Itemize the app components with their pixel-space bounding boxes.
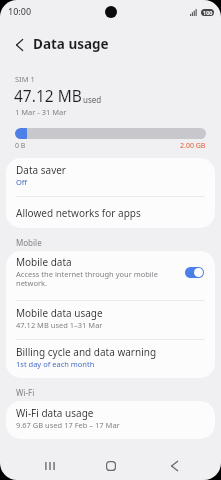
button[interactable]: Allowed networks for apps <box>6 197 215 228</box>
button[interactable]: Recent apps <box>30 452 70 480</box>
staticText: Mobile data usage <box>16 306 103 320</box>
staticText: 0 B <box>15 141 26 151</box>
staticText: Data saver <box>16 163 66 177</box>
staticText: Mobile data <box>16 255 72 269</box>
staticText: Wi-Fi <box>16 387 35 398</box>
staticText: 100 <box>203 9 213 16</box>
staticText: 2.00 GB <box>180 141 206 151</box>
staticText: 47.12 MB used 1–31 Mar <box>16 320 103 330</box>
staticText: 9.67 GB used 17 Feb – 17 Mar <box>16 420 120 430</box>
staticText: Billing cycle and data warning <box>16 345 157 359</box>
button[interactable]: Back <box>154 452 194 480</box>
button[interactable]: Navigate up <box>0 25 33 58</box>
button[interactable]: Data saver <box>6 158 215 196</box>
button[interactable]: Wi-Fi data usage <box>6 401 215 439</box>
staticText: 10:00 <box>8 5 32 17</box>
staticText: Off <box>16 177 28 187</box>
staticText: Wi-Fi data usage <box>16 406 94 420</box>
button[interactable]: Billing cycle and data warning <box>6 340 215 378</box>
staticText: SIM 1 <box>15 74 35 84</box>
staticText: used <box>83 94 102 105</box>
staticText: Access the internet through your mobile … <box>16 269 170 289</box>
staticText: 1 Mar - 31 Mar <box>15 107 67 117</box>
staticText: Mobile <box>16 237 42 248</box>
staticText: Allowed networks for apps <box>16 206 141 220</box>
button[interactable]: Home <box>91 452 131 480</box>
staticText: 1st day of each month <box>16 359 95 369</box>
button[interactable]: Mobile data usage <box>6 301 215 339</box>
button[interactable]: Mobile data <box>6 251 215 300</box>
staticText: 47.12 MB <box>14 85 82 106</box>
staticText: Data usage <box>33 35 109 53</box>
